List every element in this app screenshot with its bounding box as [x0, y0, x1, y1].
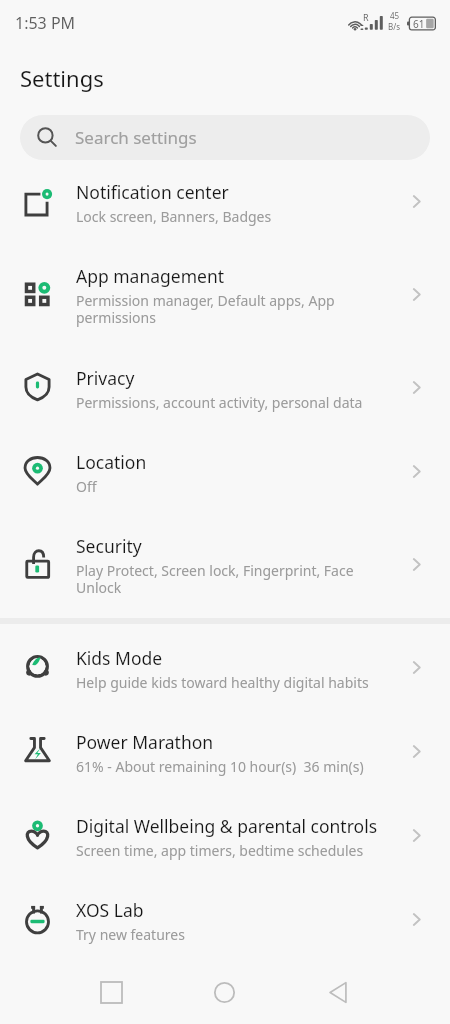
staticText: Permissions, account activity, personal … — [76, 393, 363, 412]
staticText: Security — [76, 534, 142, 558]
button[interactable]: Privacy — [0, 347, 450, 431]
staticText: Kids Mode — [76, 646, 163, 670]
staticText: 61% - About remaining 10 hour(s) 36 min(… — [76, 757, 364, 776]
button[interactable]: Back — [281, 960, 394, 1024]
button[interactable]: Search settings — [20, 115, 430, 160]
staticText: Privacy — [76, 366, 135, 390]
staticText: Settings — [20, 63, 104, 93]
staticText: 45 — [390, 10, 400, 21]
staticText: R — [363, 11, 369, 23]
staticText: Location — [76, 450, 147, 474]
staticText: XOS Lab — [76, 898, 144, 922]
staticText: Notification center — [76, 180, 229, 204]
button[interactable]: Home — [168, 960, 281, 1024]
staticText: Digital Wellbeing & parental controls — [76, 814, 378, 838]
staticText: Try new features — [76, 925, 185, 944]
button[interactable]: Security — [0, 515, 450, 617]
staticText: Lock screen, Banners, Badges — [76, 207, 272, 226]
staticText: Screen time, app timers, bedtime schedul… — [76, 841, 364, 860]
staticText: Permission manager, Default apps, App pe… — [76, 291, 380, 328]
button[interactable]: Recent apps — [55, 960, 168, 1024]
button[interactable]: Digital Wellbeing & parental controls — [0, 795, 450, 879]
button[interactable]: Location — [0, 431, 450, 515]
staticText: Play Protect, Screen lock, Fingerprint, … — [76, 561, 380, 598]
staticText: App management — [76, 264, 225, 288]
staticText: Off — [76, 477, 97, 496]
button[interactable]: XOS Lab — [0, 879, 450, 963]
staticText: 61 — [413, 17, 425, 31]
button[interactable]: App management — [0, 245, 450, 347]
button[interactable]: Power Marathon — [0, 711, 450, 795]
button[interactable]: Kids Mode — [0, 627, 450, 711]
staticText: Help guide kids toward healthy digital h… — [76, 673, 369, 692]
staticText: 1:53 PM — [15, 12, 76, 34]
staticText: B/s — [388, 21, 401, 32]
button[interactable]: Notification center — [0, 161, 450, 245]
staticText: Power Marathon — [76, 730, 214, 754]
staticText: Search settings — [75, 126, 197, 149]
